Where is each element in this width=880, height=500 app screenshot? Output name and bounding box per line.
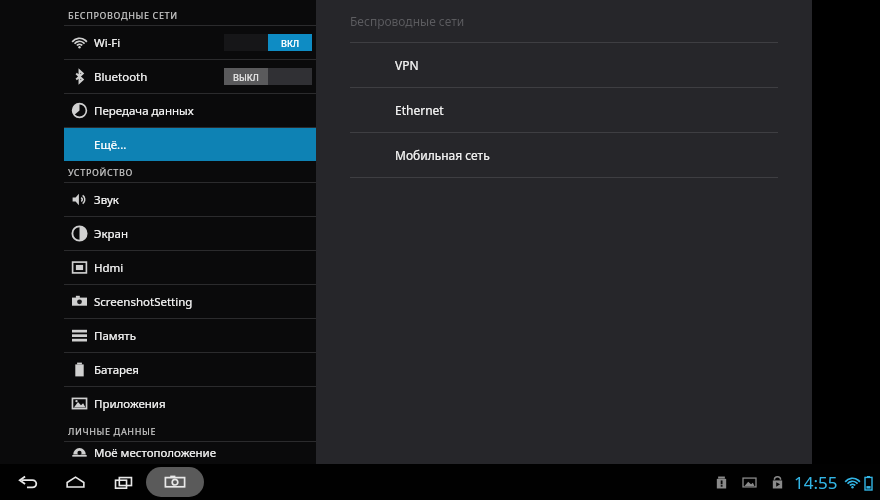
staticText: БЕСПРОВОДНЫЕ СЕТИ bbox=[68, 9, 178, 21]
button[interactable]: VPN bbox=[316, 43, 812, 87]
button[interactable]: Батарея bbox=[64, 353, 316, 386]
button[interactable]: Hdmi bbox=[64, 251, 316, 284]
staticText: Ещё... bbox=[94, 137, 127, 153]
staticText: Передача данных bbox=[94, 103, 194, 119]
staticText: Экран bbox=[94, 226, 128, 242]
button[interactable]: Home bbox=[50, 464, 100, 500]
button[interactable]: Wi-Fi bbox=[64, 26, 316, 59]
button[interactable]: Память bbox=[64, 319, 316, 352]
staticText: Приложения bbox=[94, 396, 166, 412]
staticText: ЛИЧНЫЕ ДАННЫЕ bbox=[68, 425, 157, 437]
button[interactable]: Мобильная сеть bbox=[316, 133, 812, 177]
button[interactable]: Bluetooth bbox=[64, 60, 316, 93]
staticText: Bluetooth bbox=[94, 69, 148, 85]
staticText: ScreenshotSetting bbox=[94, 294, 193, 310]
button[interactable]: Screenshot bbox=[146, 467, 204, 497]
staticText: Беспроводные сети bbox=[350, 13, 465, 29]
staticText: Ethernet bbox=[395, 102, 444, 118]
staticText: Wi-Fi bbox=[94, 35, 121, 51]
button[interactable]: Ethernet bbox=[316, 88, 812, 132]
staticText: Память bbox=[94, 328, 136, 344]
button[interactable]: ВКЛ bbox=[224, 34, 312, 51]
staticText: Батарея bbox=[94, 362, 139, 378]
staticText: VPN bbox=[395, 57, 419, 73]
staticText: Мобильная сеть bbox=[395, 147, 490, 163]
staticText: ВКЛ bbox=[281, 37, 300, 49]
button[interactable]: ScreenshotSetting bbox=[64, 285, 316, 318]
staticText: Моё местоположение bbox=[94, 445, 217, 461]
button[interactable]: Передача данных bbox=[64, 94, 316, 127]
staticText: Hdmi bbox=[94, 260, 124, 276]
button[interactable]: ВЫКЛ bbox=[224, 68, 312, 85]
staticText: Звук bbox=[94, 192, 119, 208]
button[interactable]: Приложения bbox=[64, 387, 316, 420]
staticText: ВЫКЛ bbox=[233, 71, 259, 83]
button[interactable]: Моё местоположение bbox=[64, 442, 316, 464]
staticText: УСТРОЙСТВО bbox=[68, 166, 133, 178]
button[interactable]: Recent apps bbox=[100, 464, 146, 500]
staticText: 14:55 bbox=[794, 471, 838, 494]
button[interactable]: Back bbox=[6, 464, 50, 500]
button[interactable]: Экран bbox=[64, 217, 316, 250]
button[interactable]: Звук bbox=[64, 183, 316, 216]
button[interactable]: Ещё... bbox=[64, 128, 316, 161]
